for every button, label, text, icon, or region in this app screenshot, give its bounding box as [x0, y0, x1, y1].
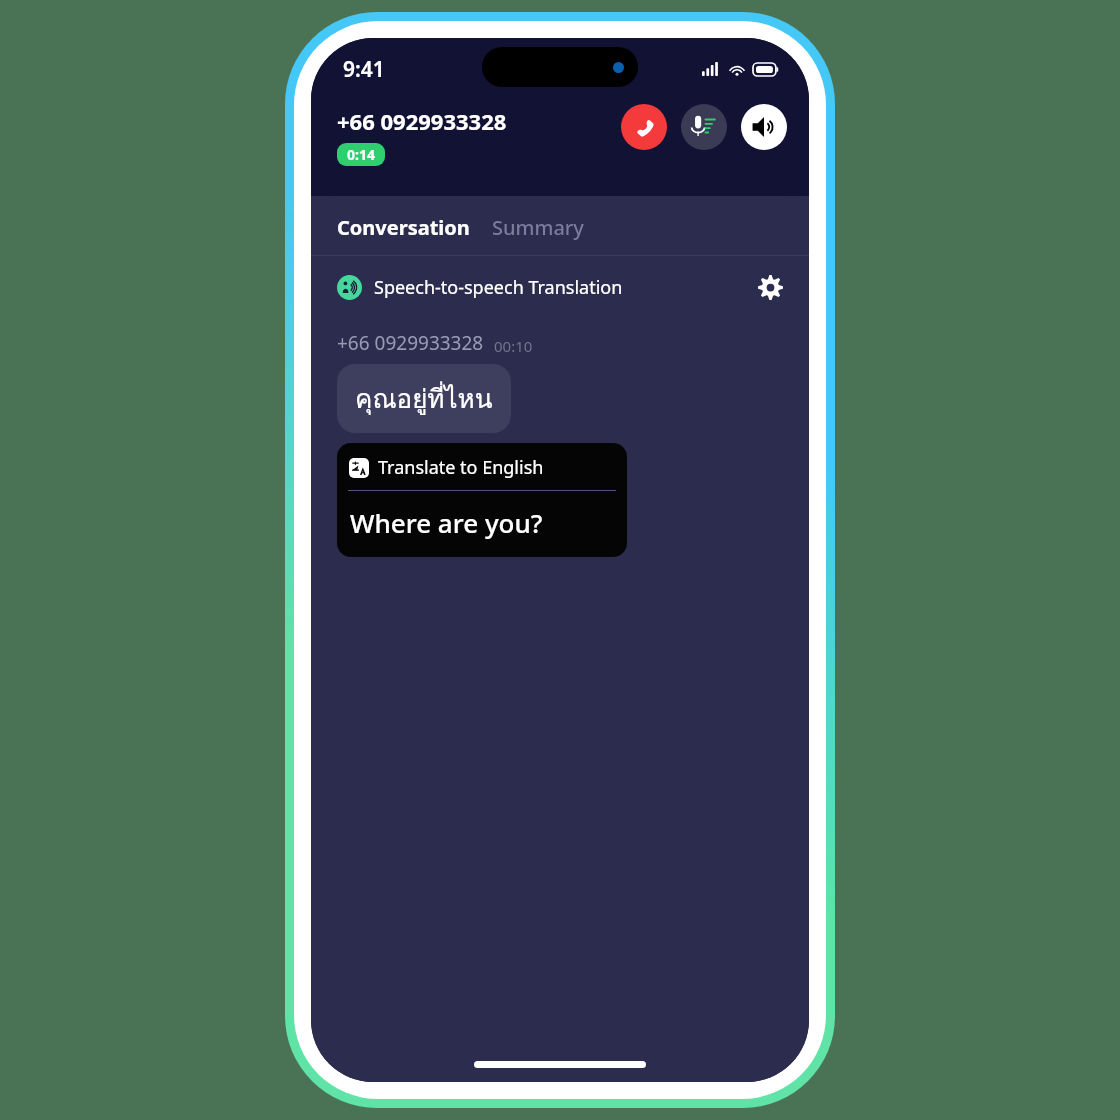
staticText: คุณอยู่ที่ไหน — [355, 378, 493, 419]
staticText: Conversation — [337, 214, 470, 241]
staticText: Translate to English — [378, 455, 544, 480]
button[interactable]: คุณอยู่ที่ไหน — [337, 364, 511, 433]
staticText: Where are you? — [350, 505, 543, 540]
staticText: 00:10 — [494, 336, 533, 356]
staticText: +66 0929933328 — [337, 330, 484, 356]
button[interactable]: Settings — [755, 272, 785, 302]
button[interactable]: Speech-to-speech Translation — [337, 272, 785, 302]
staticText: +66 0929933328 — [337, 106, 507, 136]
button[interactable]: Translate to English — [337, 443, 627, 557]
button[interactable]: Mute microphone — [681, 104, 727, 150]
staticText: Speech-to-speech Translation — [374, 275, 623, 300]
staticText: 0:14 — [347, 145, 375, 164]
button[interactable]: Conversation — [337, 214, 470, 241]
staticText: Summary — [492, 214, 584, 241]
button[interactable]: End call — [621, 104, 667, 150]
staticText: 9:41 — [343, 55, 385, 84]
button[interactable]: Summary — [492, 214, 584, 241]
button[interactable]: Speaker — [741, 104, 787, 150]
